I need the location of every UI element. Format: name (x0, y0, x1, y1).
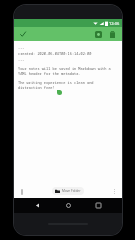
button[interactable]: Recent apps (92, 199, 105, 212)
staticText: --- (18, 57, 25, 62)
button[interactable]: --- (18, 45, 118, 180)
button[interactable]: Back (31, 199, 44, 212)
button[interactable]: Attach (17, 187, 26, 196)
staticText: Your notes will be saved in Markdown wit… (18, 66, 118, 76)
staticText: 12:06 (109, 21, 120, 26)
staticText: Move Folder (62, 189, 81, 193)
button[interactable]: Home (62, 199, 75, 212)
button[interactable]: Preview (93, 29, 104, 40)
staticText: --- (18, 45, 25, 50)
button[interactable]: Delete note (107, 29, 118, 40)
button[interactable]: Save note (18, 29, 28, 39)
button[interactable]: Move Folder (52, 187, 84, 195)
staticText: The writing experience is clean and dist… (18, 80, 118, 90)
staticText: created: 2020-06-04T00:16:14+02:00 (18, 51, 92, 56)
button[interactable]: More options (110, 187, 119, 196)
